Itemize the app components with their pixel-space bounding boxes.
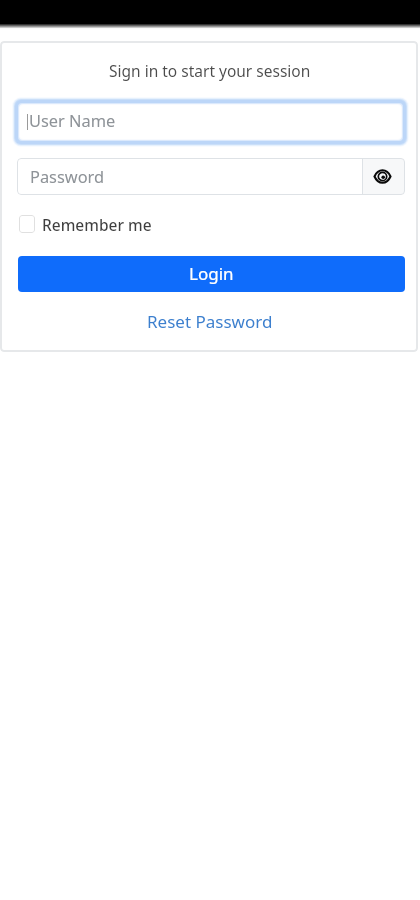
staticText: Remember me [42, 214, 152, 232]
button[interactable]: Show password [362, 158, 405, 195]
button[interactable]: Password [17, 158, 362, 195]
button[interactable]: Remember me [19, 215, 152, 233]
staticText: User Name [29, 109, 116, 131]
staticText: Reset Password [147, 310, 273, 332]
staticText: Sign in to start your session [109, 60, 311, 81]
button[interactable]: Login [18, 256, 405, 292]
button[interactable]: Reset Password [147, 310, 273, 332]
staticText: Login [189, 262, 234, 285]
staticText: Password [30, 165, 105, 187]
button[interactable]: User Name [12, 97, 409, 147]
